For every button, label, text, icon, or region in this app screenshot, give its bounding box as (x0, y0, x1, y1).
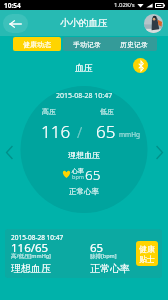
staticText: 理想血压 (11, 262, 51, 275)
button[interactable]: Next (152, 143, 166, 161)
staticText: 贴士 (139, 254, 155, 264)
staticText: 2015-08-28 10:47 (56, 91, 113, 101)
staticText: 健康动态 (23, 40, 51, 49)
button[interactable]: 手动记录 (63, 37, 110, 51)
button[interactable]: 健康动态 (13, 37, 61, 51)
button[interactable]: 2015-08-28 10:47 (5, 229, 162, 278)
staticText: 心率 (72, 167, 84, 175)
staticText: 高/低压[mmHg] (11, 252, 51, 260)
staticText: 手动记录 (73, 40, 101, 49)
staticText: 65 (96, 120, 116, 143)
button[interactable]: Bluetooth (133, 58, 148, 73)
staticText: 10:54 (4, 1, 21, 10)
staticText: / (77, 122, 83, 142)
staticText: 65 (90, 240, 104, 256)
staticText: 正常心率 (90, 262, 130, 275)
staticText: 小小的血压 (60, 17, 108, 29)
button[interactable]: Previous (2, 143, 16, 161)
staticText: 高压 (42, 107, 56, 116)
staticText: 正常心率 (69, 187, 99, 196)
staticText: 116/65 (11, 240, 49, 256)
staticText: 健康 (139, 244, 155, 254)
staticText: mmHg (119, 130, 140, 139)
staticText: 脉搏[bpm] (90, 252, 117, 260)
staticText: 理想血压 (68, 150, 100, 160)
staticText: 65 (85, 166, 101, 184)
staticText: 116 (41, 120, 71, 143)
staticText: 2015-08-28 10:47 (11, 233, 64, 242)
staticText: bpm (72, 173, 84, 180)
button[interactable]: Profile (144, 14, 163, 33)
button[interactable]: Back (3, 14, 28, 33)
staticText: 历史记录 (120, 40, 148, 49)
staticText: 低压 (100, 107, 114, 116)
staticText: 血压 (75, 62, 93, 73)
staticText: 1.02K/s (114, 1, 135, 9)
button[interactable]: 健康 (136, 241, 158, 266)
button[interactable]: 历史记录 (110, 37, 157, 51)
